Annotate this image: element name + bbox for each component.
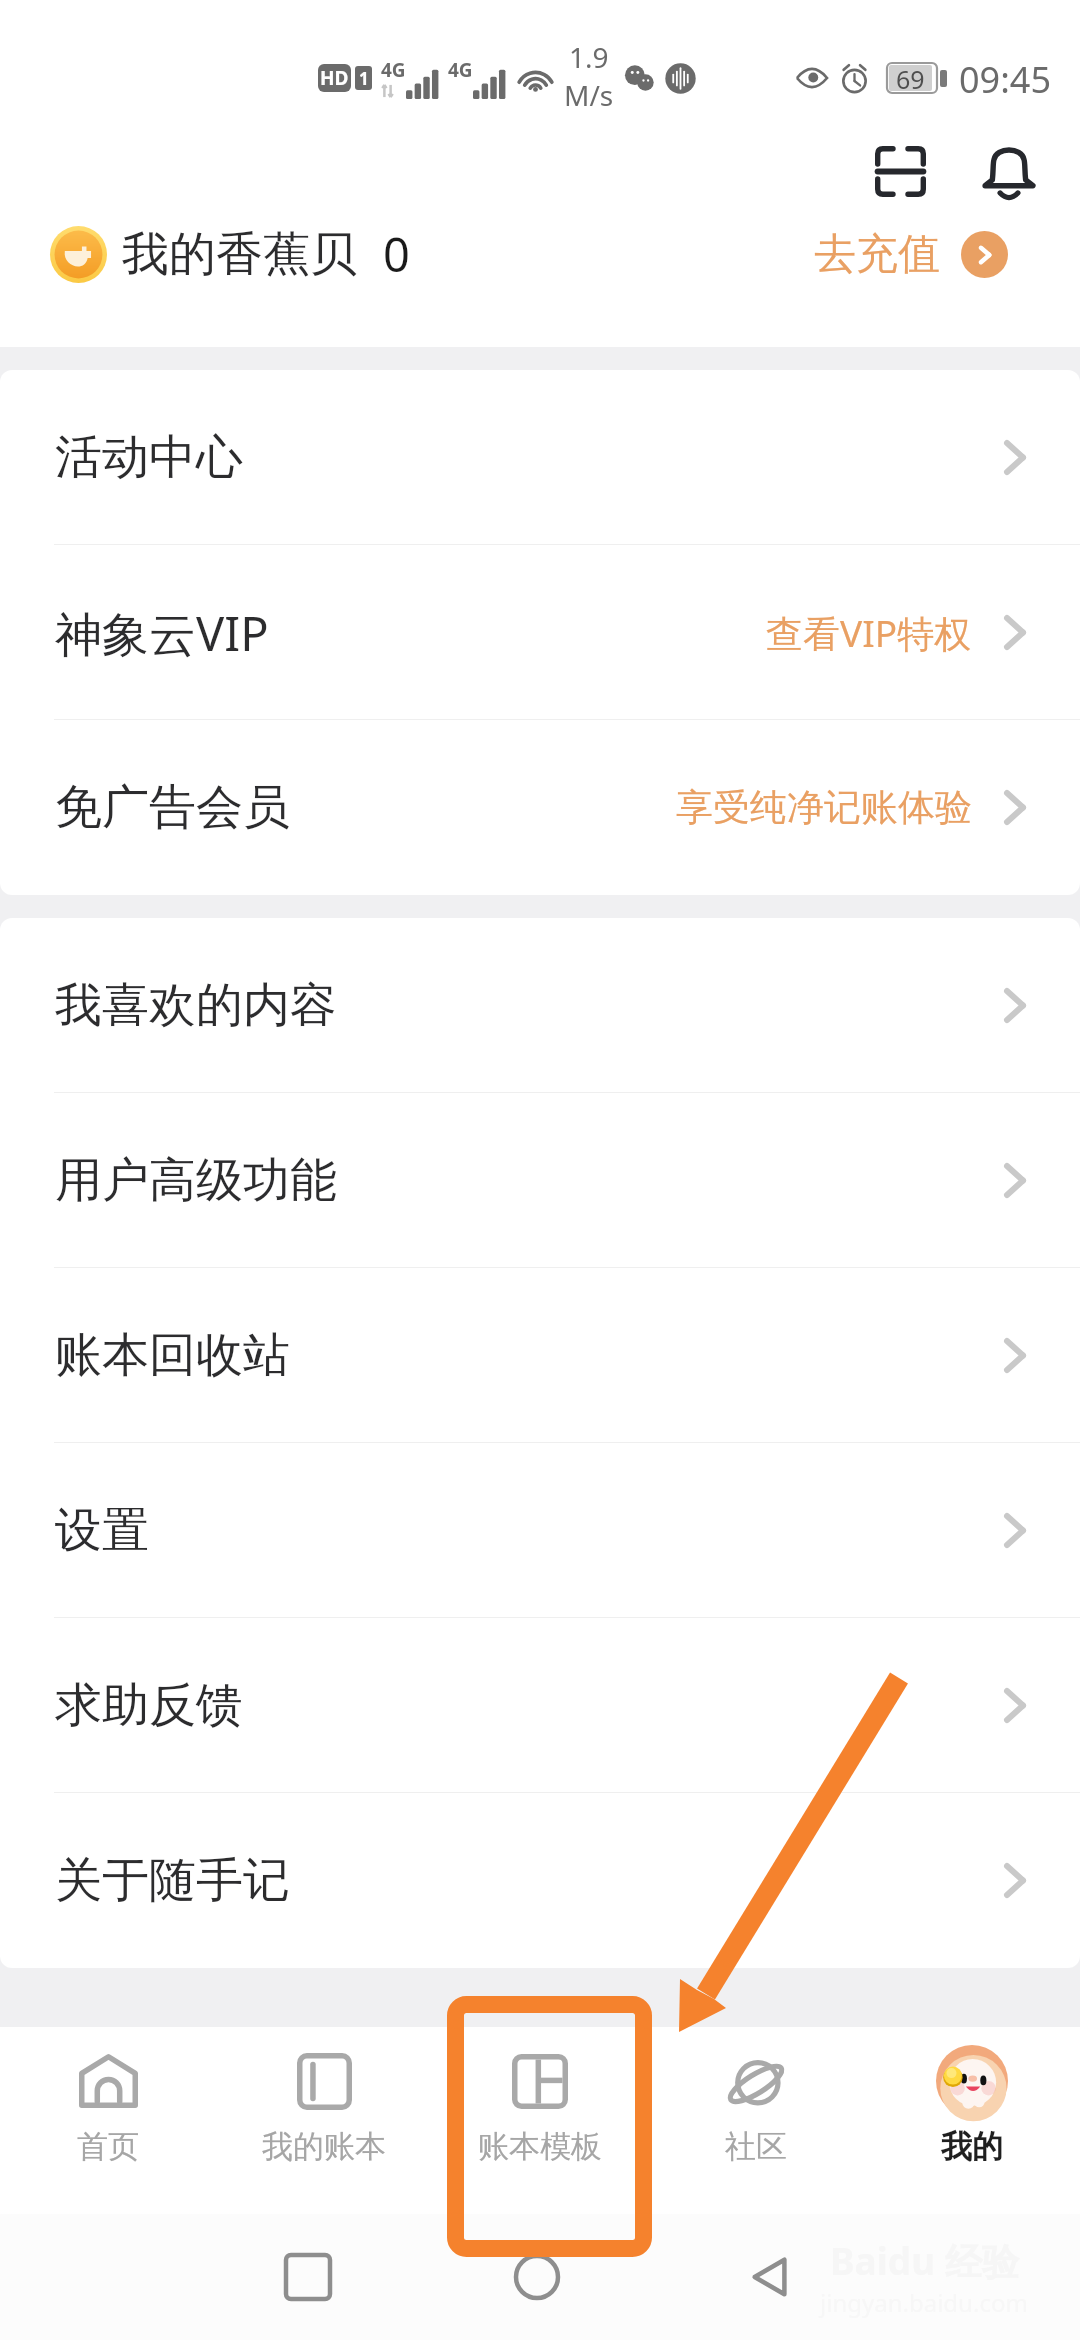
staticText: 求助反馈 — [55, 1676, 243, 1735]
staticText: 账本回收站 — [55, 1326, 290, 1385]
staticText: 我的账本 — [262, 2127, 386, 2166]
button[interactable]: 免广告会员 — [0, 720, 1080, 895]
staticText: 首页 — [77, 2127, 139, 2166]
staticText: M/s — [564, 76, 614, 114]
button[interactable]: 账本模板 — [432, 2027, 648, 2214]
button[interactable]: 社区 — [648, 2027, 864, 2214]
button[interactable]: 我的账本 — [216, 2027, 432, 2214]
staticText: 享受纯净记账体验 — [676, 784, 972, 831]
button[interactable]: 神象云VIP — [0, 545, 1080, 720]
button[interactable]: Recents — [258, 2227, 358, 2327]
button[interactable]: 我的 — [864, 2027, 1080, 2214]
button[interactable]: Scan — [858, 129, 943, 214]
button[interactable]: 求助反馈 — [0, 1618, 1080, 1793]
button[interactable]: 我喜欢的内容 — [0, 918, 1080, 1093]
staticText: 用户高级功能 — [55, 1151, 337, 1210]
staticText: 我的 — [941, 2127, 1003, 2166]
staticText: 社区 — [725, 2127, 787, 2166]
button[interactable]: 设置 — [0, 1443, 1080, 1618]
staticText: 4G — [381, 57, 406, 83]
staticText: 1 — [359, 67, 369, 90]
staticText: 活动中心 — [55, 428, 243, 487]
staticText: 09:45 — [959, 55, 1052, 99]
staticText: 0 — [383, 222, 410, 286]
staticText: 我的香蕉贝 — [122, 225, 357, 284]
button[interactable]: 活动中心 — [0, 370, 1080, 545]
button[interactable]: 我的香蕉贝 — [0, 194, 1080, 314]
staticText: 神象云VIP — [55, 601, 269, 665]
staticText: 账本模板 — [478, 2127, 602, 2166]
staticText: HD — [320, 65, 349, 91]
staticText: 查看VIP特权 — [766, 607, 972, 658]
staticText: 设置 — [55, 1501, 149, 1560]
button[interactable]: Notifications — [966, 129, 1051, 214]
staticText: 免广告会员 — [55, 778, 290, 837]
staticText: 69 — [896, 62, 925, 94]
staticText: 1.9 — [569, 38, 609, 76]
staticText: 我喜欢的内容 — [55, 976, 337, 1035]
button[interactable]: 账本回收站 — [0, 1268, 1080, 1443]
button[interactable]: Back — [720, 2227, 820, 2327]
button[interactable]: 用户高级功能 — [0, 1093, 1080, 1268]
button[interactable]: 首页 — [0, 2027, 216, 2214]
staticText: 4G — [448, 57, 473, 83]
staticText: 去充值 — [814, 228, 940, 281]
staticText: 关于随手记 — [55, 1851, 290, 1910]
button[interactable]: Home — [487, 2227, 587, 2327]
button[interactable]: 关于随手记 — [0, 1793, 1080, 1968]
